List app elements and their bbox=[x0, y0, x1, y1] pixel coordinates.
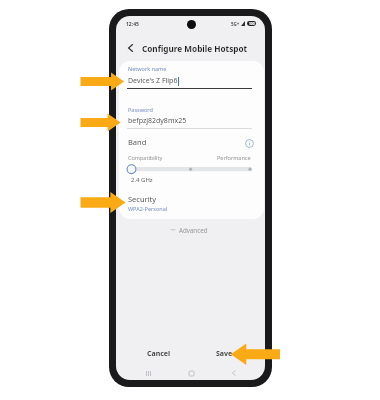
button[interactable]: befpzj82dy8mx25 bbox=[128, 116, 187, 126]
staticText: Cancel bbox=[147, 349, 171, 359]
staticText: Band bbox=[128, 137, 147, 147]
staticText: Performance bbox=[217, 154, 251, 161]
button[interactable]: Back bbox=[123, 41, 137, 55]
staticText: 5G+ bbox=[231, 21, 240, 27]
staticText: 2.4 GHz bbox=[131, 176, 153, 184]
staticText: Network name bbox=[128, 65, 167, 72]
staticText: Compatibility bbox=[128, 154, 163, 161]
staticText: Save bbox=[216, 349, 233, 359]
button[interactable]: Device's Z Flip6 bbox=[128, 76, 178, 86]
button[interactable]: Band slider bbox=[125, 163, 254, 175]
button[interactable]: Configure Mobile Hotspot bbox=[142, 43, 248, 54]
staticText: 12:45 bbox=[126, 21, 139, 28]
staticText: Advanced bbox=[179, 226, 208, 234]
staticText: Password bbox=[128, 106, 153, 113]
button[interactable]: Security bbox=[128, 194, 168, 212]
staticText: WPA2-Personal bbox=[128, 205, 168, 212]
button[interactable]: Back bbox=[228, 367, 240, 379]
button[interactable]: Advanced bbox=[170, 225, 208, 234]
button[interactable]: Recent apps bbox=[142, 367, 155, 379]
button[interactable]: Cancel bbox=[147, 349, 171, 359]
button[interactable]: Save bbox=[216, 349, 233, 359]
button[interactable]: Band information bbox=[243, 137, 255, 149]
staticText: 100 bbox=[249, 22, 255, 26]
staticText: Security bbox=[128, 194, 157, 204]
button[interactable]: Home bbox=[185, 367, 197, 379]
